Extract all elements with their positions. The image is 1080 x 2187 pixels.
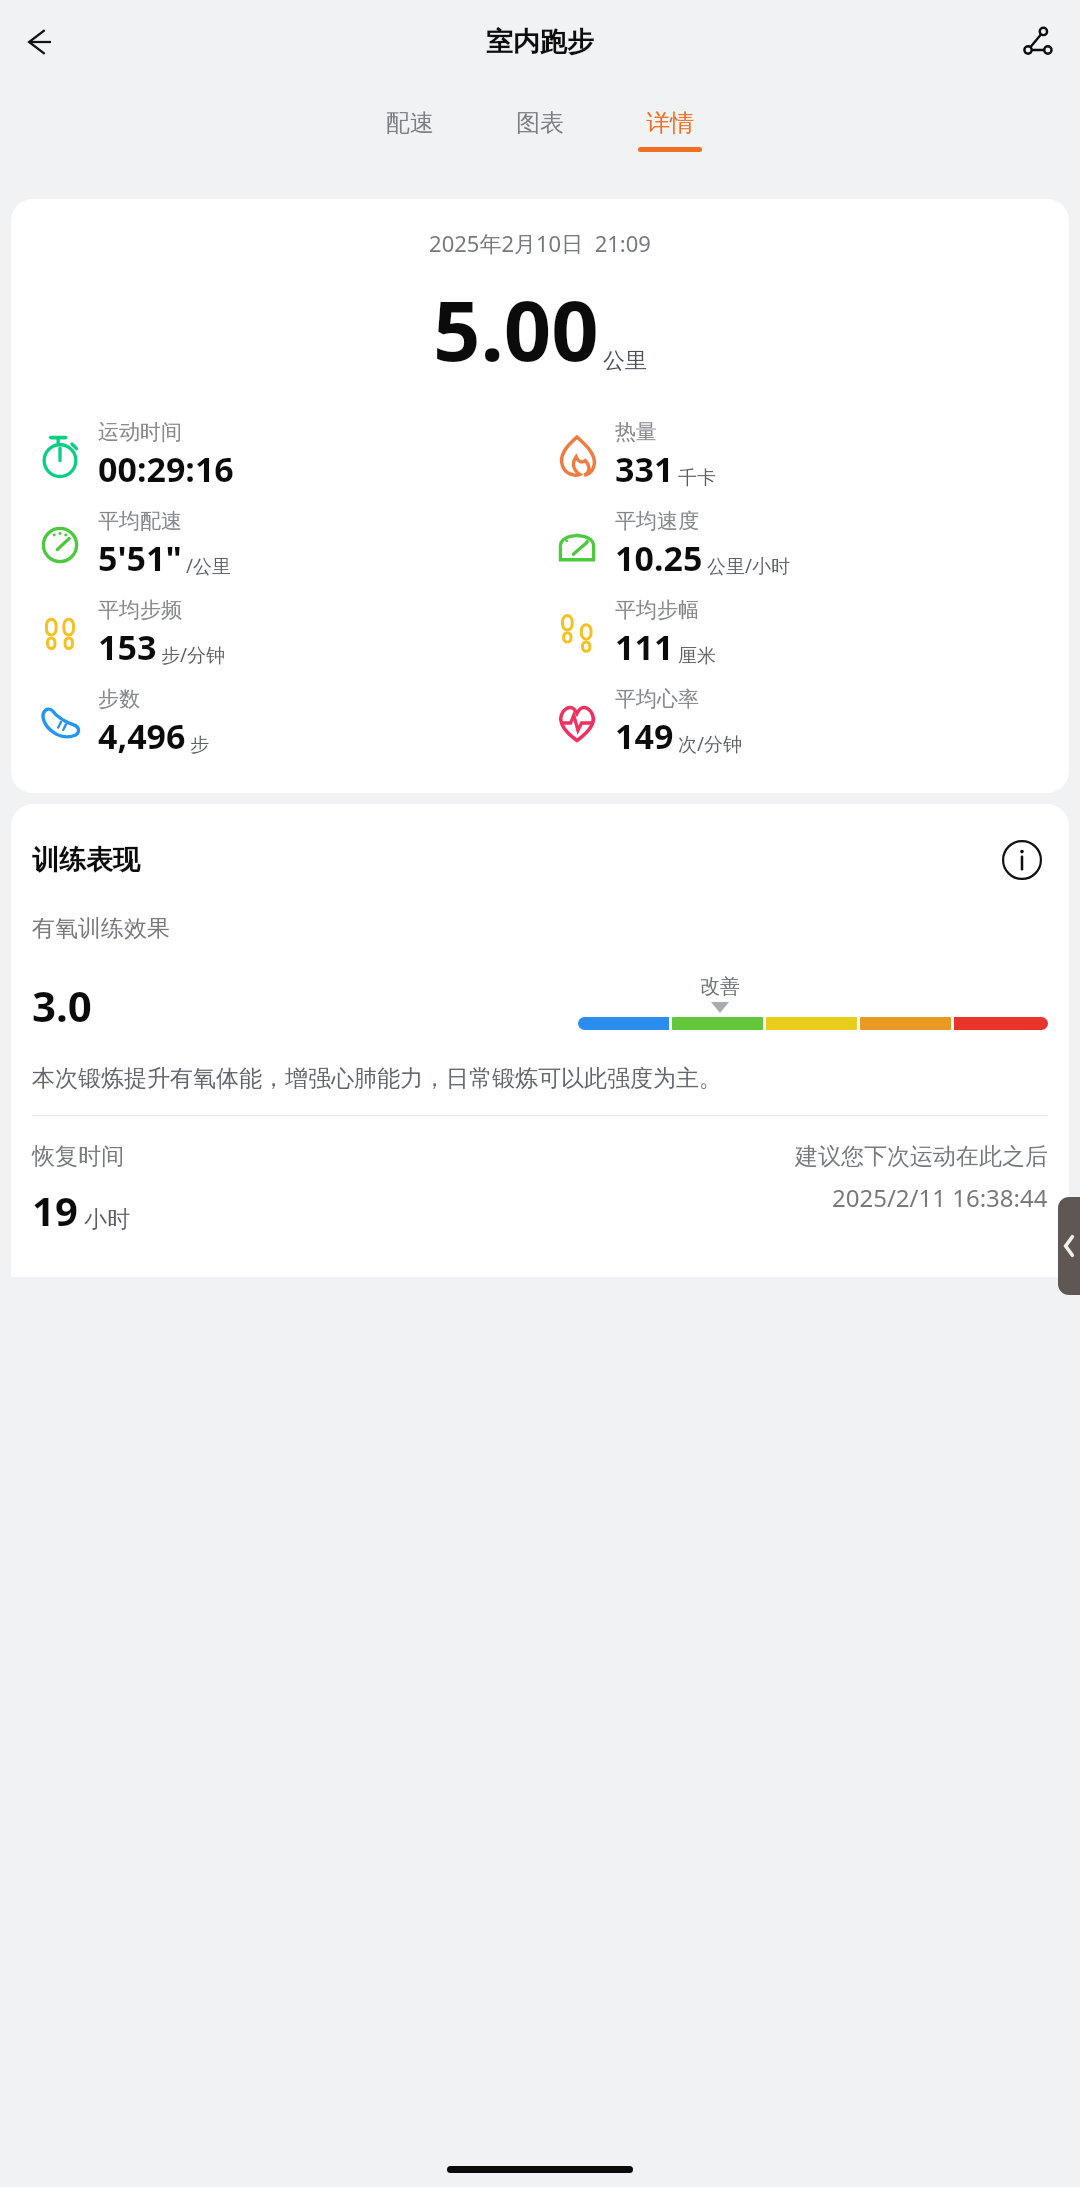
staticText: 热量 [615, 419, 657, 445]
button[interactable]: 详情 [614, 108, 726, 152]
staticText: 平均步频 [98, 597, 182, 623]
staticText: 2025年2月10日 21:09 [11, 228, 1069, 258]
staticText: 改善 [700, 974, 740, 999]
button[interactable]: Back [1058, 1197, 1080, 1295]
staticText: 配速 [386, 108, 434, 138]
button[interactable]: Back [8, 11, 70, 73]
staticText: 步 [190, 733, 209, 757]
staticText: 平均心率 [615, 686, 699, 712]
staticText: 2025/2/11 16:38:44 [832, 1181, 1048, 1214]
button[interactable]: 平均步频 [33, 589, 540, 678]
staticText: 步/分钟 [161, 642, 226, 668]
staticText: 恢复时间 [32, 1142, 124, 1171]
staticText: 00:29:16 [98, 446, 234, 492]
button[interactable]: 平均心率 [550, 678, 1069, 767]
staticText: 本次锻炼提升有氧体能，增强心肺能力，日常锻炼可以此强度为主。 [32, 1064, 722, 1093]
staticText: 有氧训练效果 [32, 914, 170, 943]
button[interactable]: 平均步幅 [550, 589, 1069, 678]
staticText: 5'51" [98, 535, 182, 581]
button[interactable]: 图表 [484, 108, 596, 152]
staticText: 训练表现 [32, 843, 140, 877]
button[interactable]: 平均配速 [33, 500, 540, 589]
button[interactable]: 运动时间 [33, 411, 540, 500]
staticText: 149 [615, 713, 674, 759]
staticText: /公里 [186, 553, 232, 579]
staticText: 运动时间 [98, 419, 182, 445]
button[interactable]: Share [1008, 13, 1066, 71]
staticText: 111 [615, 624, 674, 670]
button[interactable]: 配速 [354, 108, 466, 152]
staticText: 153 [98, 624, 157, 670]
button[interactable]: 步数 [33, 678, 540, 767]
staticText: 3.0 [32, 977, 92, 1034]
staticText: 4,496 [98, 713, 186, 759]
staticText: 331 [615, 446, 674, 492]
staticText: 平均速度 [615, 508, 699, 534]
button[interactable]: 热量 [550, 411, 1069, 500]
staticText: 公里/小时 [707, 553, 791, 579]
staticText: 千卡 [678, 466, 716, 490]
staticText: 10.25 [615, 535, 703, 581]
staticText: 小时 [84, 1205, 130, 1234]
staticText: 平均配速 [98, 508, 182, 534]
staticText: 室内跑步 [486, 25, 594, 59]
staticText: 次/分钟 [678, 731, 743, 757]
staticText: 19 [32, 1183, 78, 1237]
button[interactable]: 平均速度 [550, 500, 1069, 589]
staticText: 图表 [516, 108, 564, 138]
staticText: 公里 [603, 347, 647, 375]
staticText: 步数 [98, 686, 140, 712]
staticText: 5.00 [433, 272, 599, 385]
staticText: 详情 [646, 108, 694, 138]
button[interactable]: Info [996, 834, 1048, 886]
staticText: 平均步幅 [615, 597, 699, 623]
staticText: 建议您下次运动在此之后 [795, 1142, 1048, 1171]
staticText: 厘米 [678, 644, 716, 668]
